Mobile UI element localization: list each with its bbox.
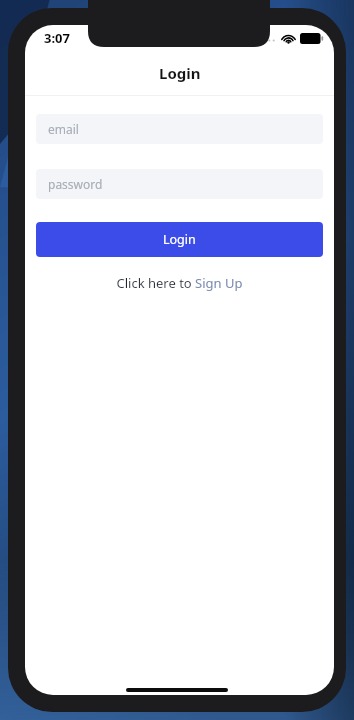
button[interactable]: Click here to Sign Up bbox=[108, 272, 251, 294]
staticText: 3:07 bbox=[44, 29, 70, 47]
staticText: Click here to Sign Up bbox=[116, 274, 243, 292]
staticText: Login bbox=[163, 231, 196, 248]
staticText: Login bbox=[159, 63, 201, 83]
staticText: password bbox=[48, 176, 103, 192]
staticText: email bbox=[48, 121, 79, 137]
button[interactable]: password bbox=[36, 169, 323, 199]
button[interactable]: Login bbox=[36, 222, 323, 257]
button[interactable]: email bbox=[36, 114, 323, 144]
